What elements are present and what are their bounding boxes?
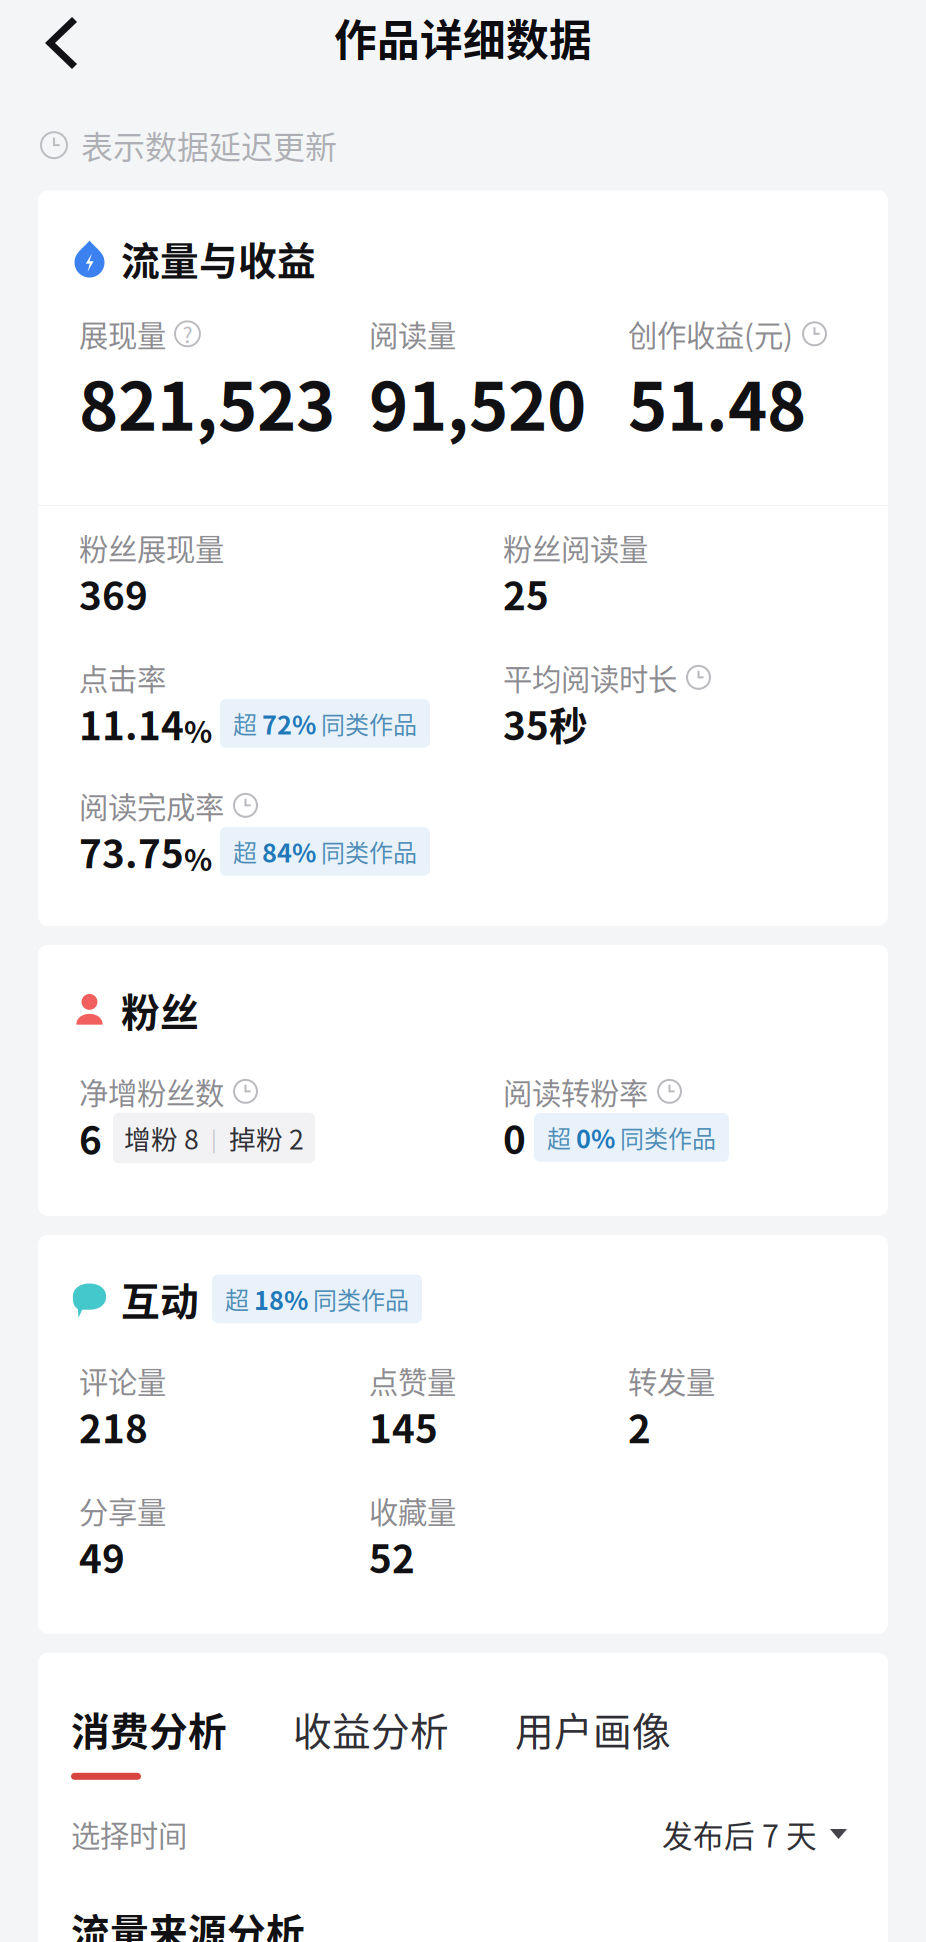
staticText: 51.48 [628, 353, 806, 450]
staticText: 73.75 [79, 823, 184, 879]
staticText: 掉粉 [229, 1118, 289, 1157]
staticText: 72% [262, 705, 316, 742]
staticText: 收益分析 [293, 1701, 449, 1757]
button[interactable]: 消费分析 [71, 1701, 293, 1780]
staticText: 同类作品 [316, 706, 417, 741]
staticText: 净增粉丝数 [79, 1070, 224, 1113]
staticText: 消费分析 [71, 1701, 227, 1757]
staticText: 同类作品 [316, 834, 417, 869]
staticText: 84% [262, 833, 316, 870]
staticText: % [184, 709, 212, 751]
staticText: 6 [79, 1110, 102, 1166]
button[interactable]: 用户画像 [515, 1701, 737, 1780]
button[interactable]: Back [0, 0, 104, 100]
staticText: 创作收益(元) [628, 313, 793, 355]
staticText: 11.14 [79, 695, 184, 751]
staticText: 369 [79, 565, 148, 621]
staticText: 流量来源分析 [71, 1902, 305, 1942]
staticText: 粉丝阅读量 [503, 526, 648, 569]
staticText: 52 [369, 1528, 415, 1584]
staticText: 超 [233, 834, 262, 869]
staticText: | [211, 1122, 217, 1153]
staticText: 转发量 [628, 1359, 715, 1402]
staticText: 同类作品 [615, 1120, 716, 1155]
staticText: 阅读量 [369, 313, 456, 355]
staticText: 18% [254, 1280, 308, 1317]
staticText: 2 [628, 1398, 651, 1454]
staticText: 49 [79, 1528, 125, 1584]
staticText: 0% [576, 1119, 615, 1156]
staticText: 平均阅读时长 [503, 656, 677, 699]
staticText: 增粉 [124, 1118, 184, 1157]
staticText: 821,523 [79, 353, 335, 450]
staticText: 互动 [121, 1271, 199, 1327]
staticText: 同类作品 [308, 1281, 409, 1316]
staticText: 91,520 [369, 353, 586, 450]
staticText: 分享量 [79, 1489, 166, 1532]
staticText: 流量与收益 [121, 230, 316, 286]
staticText: 收藏量 [369, 1489, 456, 1532]
staticText: 点击率 [79, 656, 166, 699]
staticText: 粉丝 [121, 982, 199, 1038]
staticText: 粉丝展现量 [79, 526, 224, 569]
staticText: 表示数据延迟更新 [81, 122, 337, 168]
staticText: 评论量 [79, 1359, 166, 1402]
staticText: 用户画像 [515, 1701, 671, 1757]
staticText: 25 [503, 565, 549, 621]
staticText: 218 [79, 1398, 148, 1454]
staticText: 选择时间 [71, 1813, 187, 1855]
staticText: 145 [369, 1398, 438, 1454]
button[interactable]: 收益分析 [293, 1701, 515, 1780]
staticText: 作品详细数据 [334, 7, 592, 68]
staticText: 阅读完成率 [79, 784, 224, 827]
staticText: ? [182, 318, 192, 349]
staticText: 35秒 [503, 695, 588, 751]
staticText: 0 [503, 1109, 526, 1165]
staticText: 阅读转粉率 [503, 1070, 648, 1113]
staticText: 8 [184, 1118, 199, 1157]
staticText: 展现量 [79, 313, 166, 355]
staticText: 发布后 7 天 [662, 1812, 817, 1856]
staticText: 点赞量 [369, 1359, 456, 1402]
button[interactable]: 发布后 7 天 [662, 1812, 847, 1856]
staticText: 超 [233, 706, 262, 741]
staticText: 2 [289, 1118, 304, 1157]
staticText: 超 [547, 1120, 576, 1155]
staticText: % [184, 837, 212, 879]
staticText: 超 [225, 1281, 254, 1316]
